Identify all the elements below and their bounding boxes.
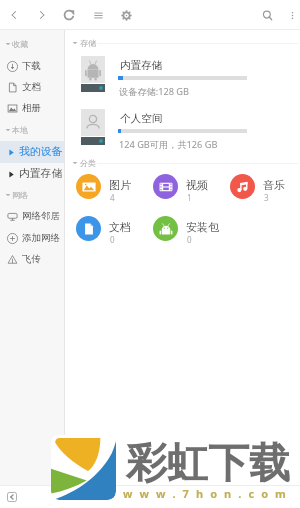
staticText: 124 GB可用，共126 GB (119, 138, 218, 151)
staticText: 相册 (22, 102, 41, 114)
staticText: 内置存储 (19, 167, 63, 181)
button[interactable]: 相册 (0, 98, 64, 118)
button[interactable]: Forward (29, 2, 55, 28)
button[interactable]: 添加网络 (0, 228, 64, 248)
button[interactable]: 安装包 (153, 216, 227, 246)
button[interactable]: 文档 (0, 77, 64, 97)
staticText: 分类 (80, 158, 96, 168)
staticText: 个人空间 (120, 112, 163, 125)
button[interactable]: More options (279, 2, 300, 28)
staticText: 0 (187, 234, 192, 245)
button[interactable]: Refresh (56, 2, 82, 28)
staticText: 0 (110, 234, 115, 245)
staticText: 彩虹下载 (126, 438, 290, 490)
button[interactable]: 文档 (76, 216, 150, 246)
staticText: 文档 (109, 220, 131, 234)
staticText: 4 (110, 192, 115, 203)
button[interactable]: Back (7, 492, 17, 502)
button[interactable]: 网络邻居 (0, 206, 64, 226)
button[interactable]: 我的设备 (0, 141, 64, 163)
button[interactable]: 飞传 (0, 249, 64, 269)
staticText: w w w . 7 h o n . c o m (123, 486, 288, 501)
button[interactable]: Search (254, 2, 280, 28)
staticText: 我的设备 (19, 145, 63, 159)
staticText: 内置存储 (120, 59, 163, 72)
staticText: 存储 (80, 38, 96, 48)
button[interactable]: 下载 (0, 56, 64, 76)
staticText: 3 (264, 192, 269, 203)
staticText: 收藏 (12, 39, 28, 49)
button[interactable]: Menu (85, 2, 111, 28)
staticText: 音乐 (263, 178, 285, 192)
staticText: 网络 (12, 190, 28, 200)
staticText: 设备存储:128 GB (119, 85, 190, 98)
staticText: 图片 (109, 178, 131, 192)
staticText: 安装包 (186, 220, 219, 234)
button[interactable]: Settings (113, 2, 139, 28)
staticText: 视频 (186, 178, 208, 192)
button[interactable]: 音乐 (230, 174, 300, 204)
staticText: 飞传 (22, 253, 41, 265)
staticText: 1 (187, 192, 192, 203)
staticText: 下载 (22, 60, 41, 72)
button[interactable]: 内置存储 (0, 163, 64, 185)
button[interactable]: Back (1, 2, 27, 28)
staticText: 网络邻居 (22, 210, 60, 222)
button[interactable]: 个人空间 (64, 109, 300, 159)
staticText: 添加网络 (22, 232, 60, 244)
button[interactable]: 图片 (76, 174, 150, 204)
staticText: 本地 (12, 125, 28, 135)
staticText: 文档 (22, 81, 41, 93)
button[interactable]: 内置存储 (64, 56, 300, 106)
button[interactable]: 视频 (153, 174, 227, 204)
